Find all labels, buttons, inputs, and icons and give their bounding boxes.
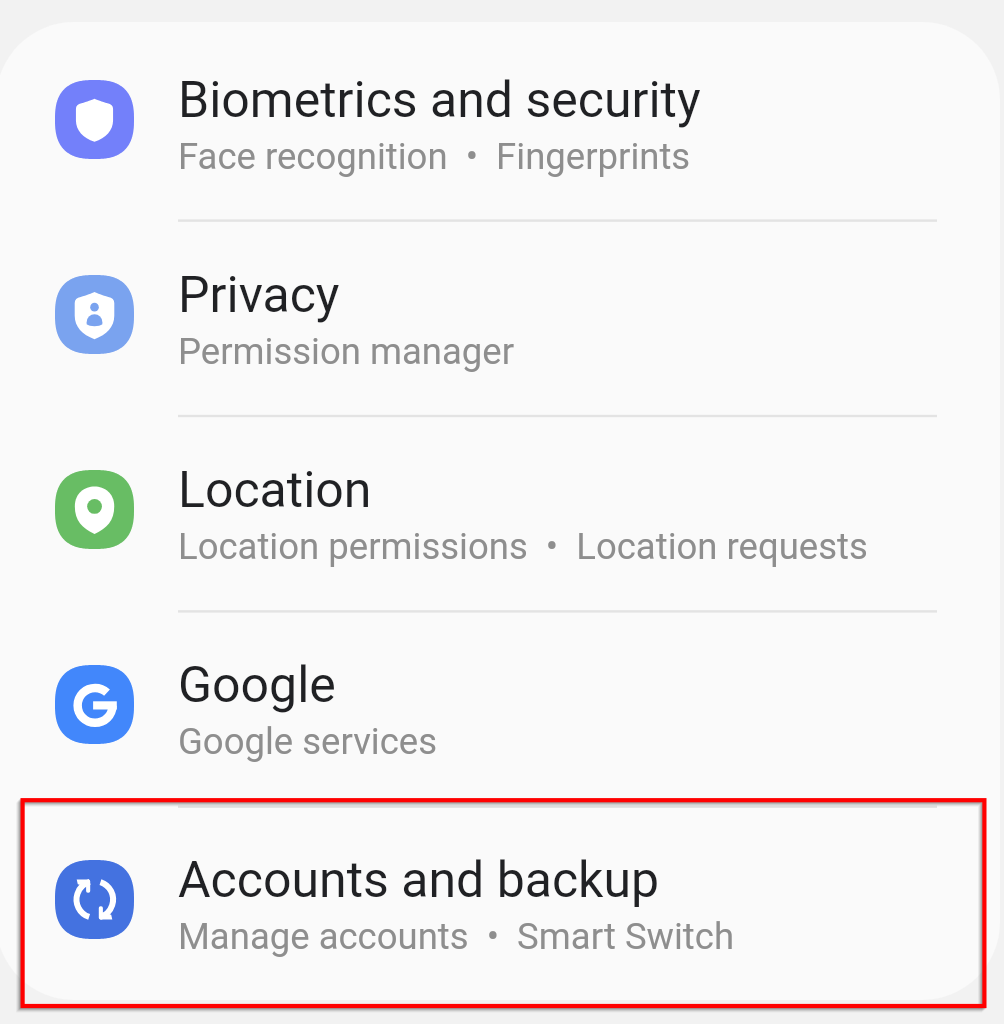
button[interactable]: Accounts and backup	[0, 802, 1000, 997]
staticText: Location permissions • Location requests	[178, 525, 868, 568]
other: Privacy	[55, 275, 134, 354]
staticText: Face recognition • Fingerprints	[178, 135, 691, 178]
button[interactable]: Google	[0, 607, 1000, 802]
staticText: Google services	[178, 720, 438, 763]
button[interactable]: Privacy	[0, 217, 1000, 412]
staticText: Location	[178, 461, 372, 520]
staticText: Biometrics and security	[178, 71, 701, 130]
other: Accounts and backup	[55, 860, 134, 939]
staticText: Google	[178, 656, 336, 715]
button[interactable]: Location	[0, 412, 1000, 607]
staticText: Permission manager	[178, 330, 515, 373]
other: Biometrics and security	[55, 80, 134, 159]
staticText: Privacy	[178, 266, 340, 325]
staticText: Accounts and backup	[178, 851, 660, 910]
button[interactable]: Biometrics and security	[0, 22, 1000, 217]
other: Google	[55, 665, 134, 744]
staticText: Manage accounts • Smart Switch	[178, 915, 735, 958]
other: Location	[55, 470, 134, 549]
